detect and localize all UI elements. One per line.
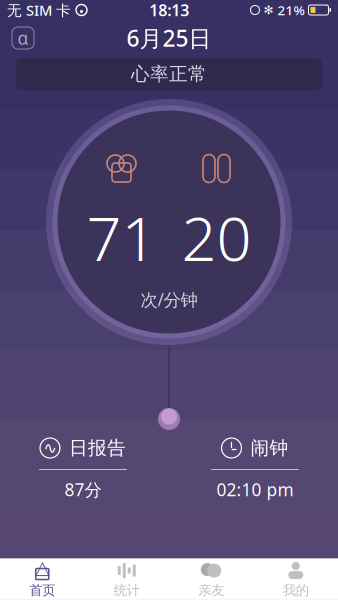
staticText: 6月25日 <box>126 23 211 53</box>
staticText: 首页 <box>29 582 55 598</box>
staticText: 闹钟 <box>250 436 288 459</box>
button[interactable]: Daily report <box>28 436 138 501</box>
staticText: 20 <box>181 196 251 278</box>
staticText: 02:10 pm <box>216 478 293 501</box>
button[interactable]: 统计 <box>84 559 169 600</box>
staticText: 87分 <box>64 478 101 501</box>
button[interactable]: 我的 <box>253 559 338 600</box>
staticText: α <box>17 26 28 49</box>
staticText: ✻ <box>263 3 273 17</box>
staticText: 21% <box>277 1 304 19</box>
button[interactable]: Alarm <box>200 436 310 501</box>
staticText: 我的 <box>283 582 309 598</box>
staticText: 71 <box>86 196 156 278</box>
staticText: 日报告 <box>69 436 126 459</box>
staticText: 18:13 <box>149 0 189 21</box>
staticText: 统计 <box>114 582 140 598</box>
button[interactable]: 心率正常 <box>16 58 322 90</box>
button[interactable]: △ <box>0 559 84 600</box>
staticText: 次/分钟 <box>140 288 197 311</box>
staticText: △ <box>35 557 49 578</box>
button[interactable]: Alpha <box>12 27 34 49</box>
staticText: 亲友 <box>198 582 224 598</box>
staticText: ∿ <box>43 439 56 457</box>
staticText: 无 SIM 卡 <box>7 0 71 20</box>
button[interactable]: 亲友 <box>169 559 253 600</box>
staticText: 心率正常 <box>131 62 207 85</box>
